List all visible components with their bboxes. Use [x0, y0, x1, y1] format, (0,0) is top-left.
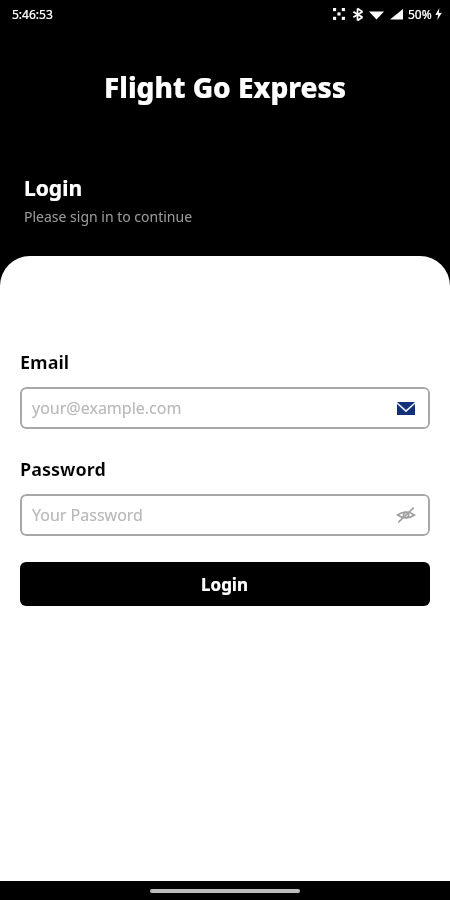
staticText: Email: [20, 350, 70, 375]
button[interactable]: Your Password: [20, 494, 430, 536]
button[interactable]: Show password: [394, 503, 418, 527]
staticText: Your Password: [32, 504, 394, 526]
button[interactable]: Email: [394, 396, 418, 420]
button[interactable]: Login: [20, 562, 430, 606]
staticText: 5:46:53: [12, 6, 53, 22]
staticText: Please sign in to continue: [24, 207, 193, 226]
staticText: 50%: [408, 6, 432, 22]
button[interactable]: your@example.com: [20, 387, 430, 429]
staticText: Login: [24, 174, 83, 203]
staticText: Flight Go Express: [0, 68, 450, 106]
staticText: Login: [201, 573, 249, 596]
staticText: your@example.com: [32, 397, 394, 419]
staticText: Password: [20, 457, 106, 482]
